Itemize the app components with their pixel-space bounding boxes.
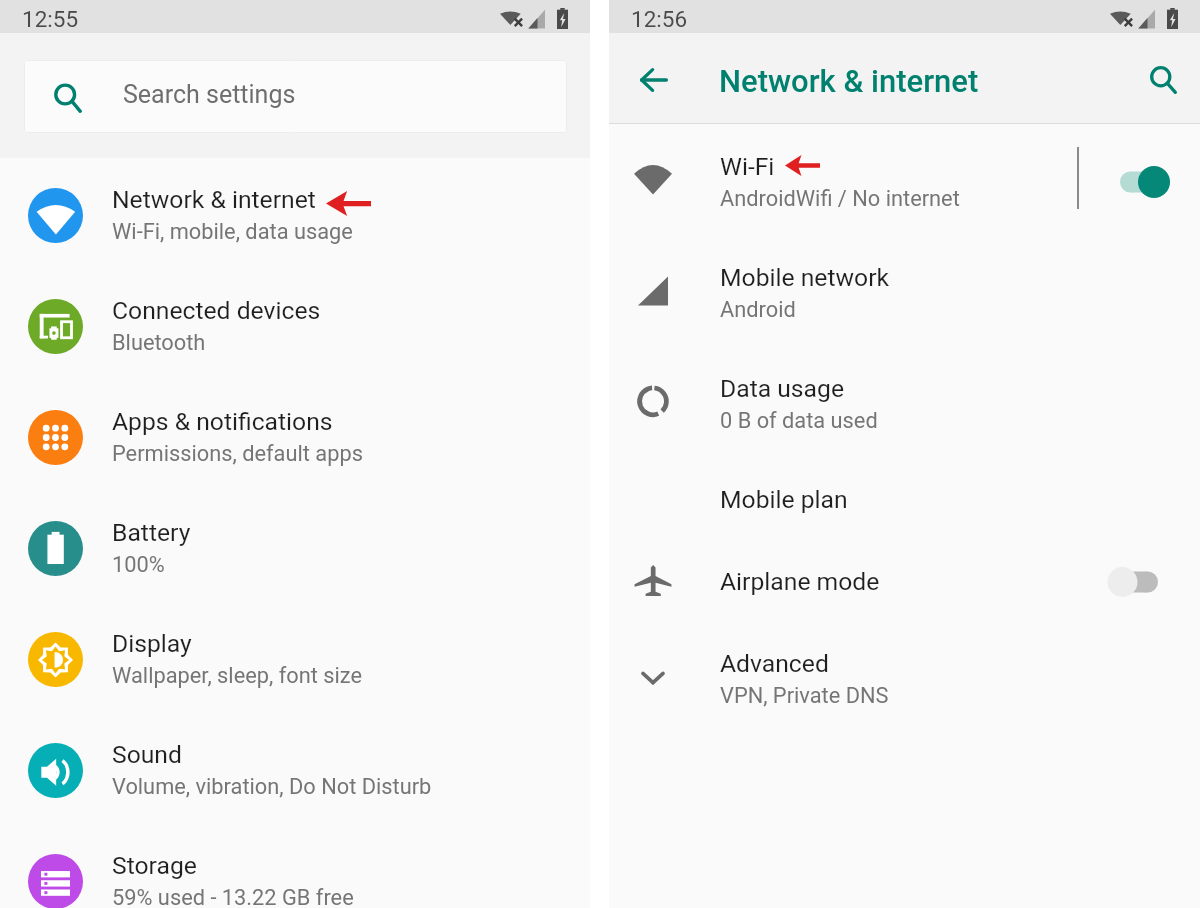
button[interactable]: Apps & notifications xyxy=(0,382,590,493)
button[interactable]: Mobile network xyxy=(609,237,1200,348)
button[interactable]: Back xyxy=(615,46,673,104)
button[interactable]: Storage xyxy=(0,826,590,908)
staticText: Android xyxy=(720,297,796,323)
staticText: Advanced xyxy=(720,649,829,678)
staticText: Mobile network xyxy=(720,263,890,292)
button[interactable]: Wi-Fi xyxy=(609,126,1200,237)
button[interactable]: Airplane mode toggle xyxy=(1092,562,1174,602)
staticText: Mobile plan xyxy=(720,485,848,514)
button[interactable]: Battery xyxy=(0,493,590,604)
staticText: 100% xyxy=(112,552,165,578)
staticText: 12:55 xyxy=(22,6,79,32)
staticText: Apps & notifications xyxy=(112,407,333,436)
staticText: VPN, Private DNS xyxy=(720,683,889,709)
button[interactable]: Connected devices xyxy=(0,271,590,382)
staticText: Network & internet xyxy=(719,63,979,99)
staticText: Wi-Fi, mobile, data usage xyxy=(112,219,353,245)
button[interactable]: Sound xyxy=(0,715,590,826)
staticText: Display xyxy=(112,629,192,658)
staticText: Volume, vibration, Do Not Disturb xyxy=(112,774,432,800)
staticText: AndroidWifi / No internet xyxy=(720,186,960,212)
staticText: Connected devices xyxy=(112,296,321,325)
button[interactable]: Mobile plan xyxy=(609,459,1200,541)
button[interactable]: Airplane mode xyxy=(609,541,1200,623)
staticText: 12:56 xyxy=(631,6,688,32)
button[interactable]: Network & internet xyxy=(0,160,590,271)
staticText: Data usage xyxy=(720,374,844,403)
staticText: 59% used - 13.22 GB free xyxy=(112,885,354,908)
staticText: Sound xyxy=(112,740,182,769)
button[interactable]: Display xyxy=(0,604,590,715)
staticText: Permissions, default apps xyxy=(112,441,363,467)
staticText: Wallpaper, sleep, font size xyxy=(112,663,363,689)
staticText: Airplane mode xyxy=(720,567,880,596)
staticText: Bluetooth xyxy=(112,330,206,356)
staticText: Wi-Fi xyxy=(720,152,775,181)
staticText: Storage xyxy=(112,851,197,880)
staticText: Network & internet xyxy=(112,185,316,214)
staticText: Search settings xyxy=(123,80,296,109)
button[interactable]: Search xyxy=(1120,47,1178,105)
button[interactable]: Advanced xyxy=(609,623,1200,734)
button[interactable]: Search settings xyxy=(24,60,567,133)
button[interactable]: Data usage xyxy=(609,348,1200,459)
button[interactable]: Wi-Fi toggle xyxy=(1104,162,1186,202)
staticText: 0 B of data used xyxy=(720,408,878,434)
staticText: Battery xyxy=(112,518,191,547)
